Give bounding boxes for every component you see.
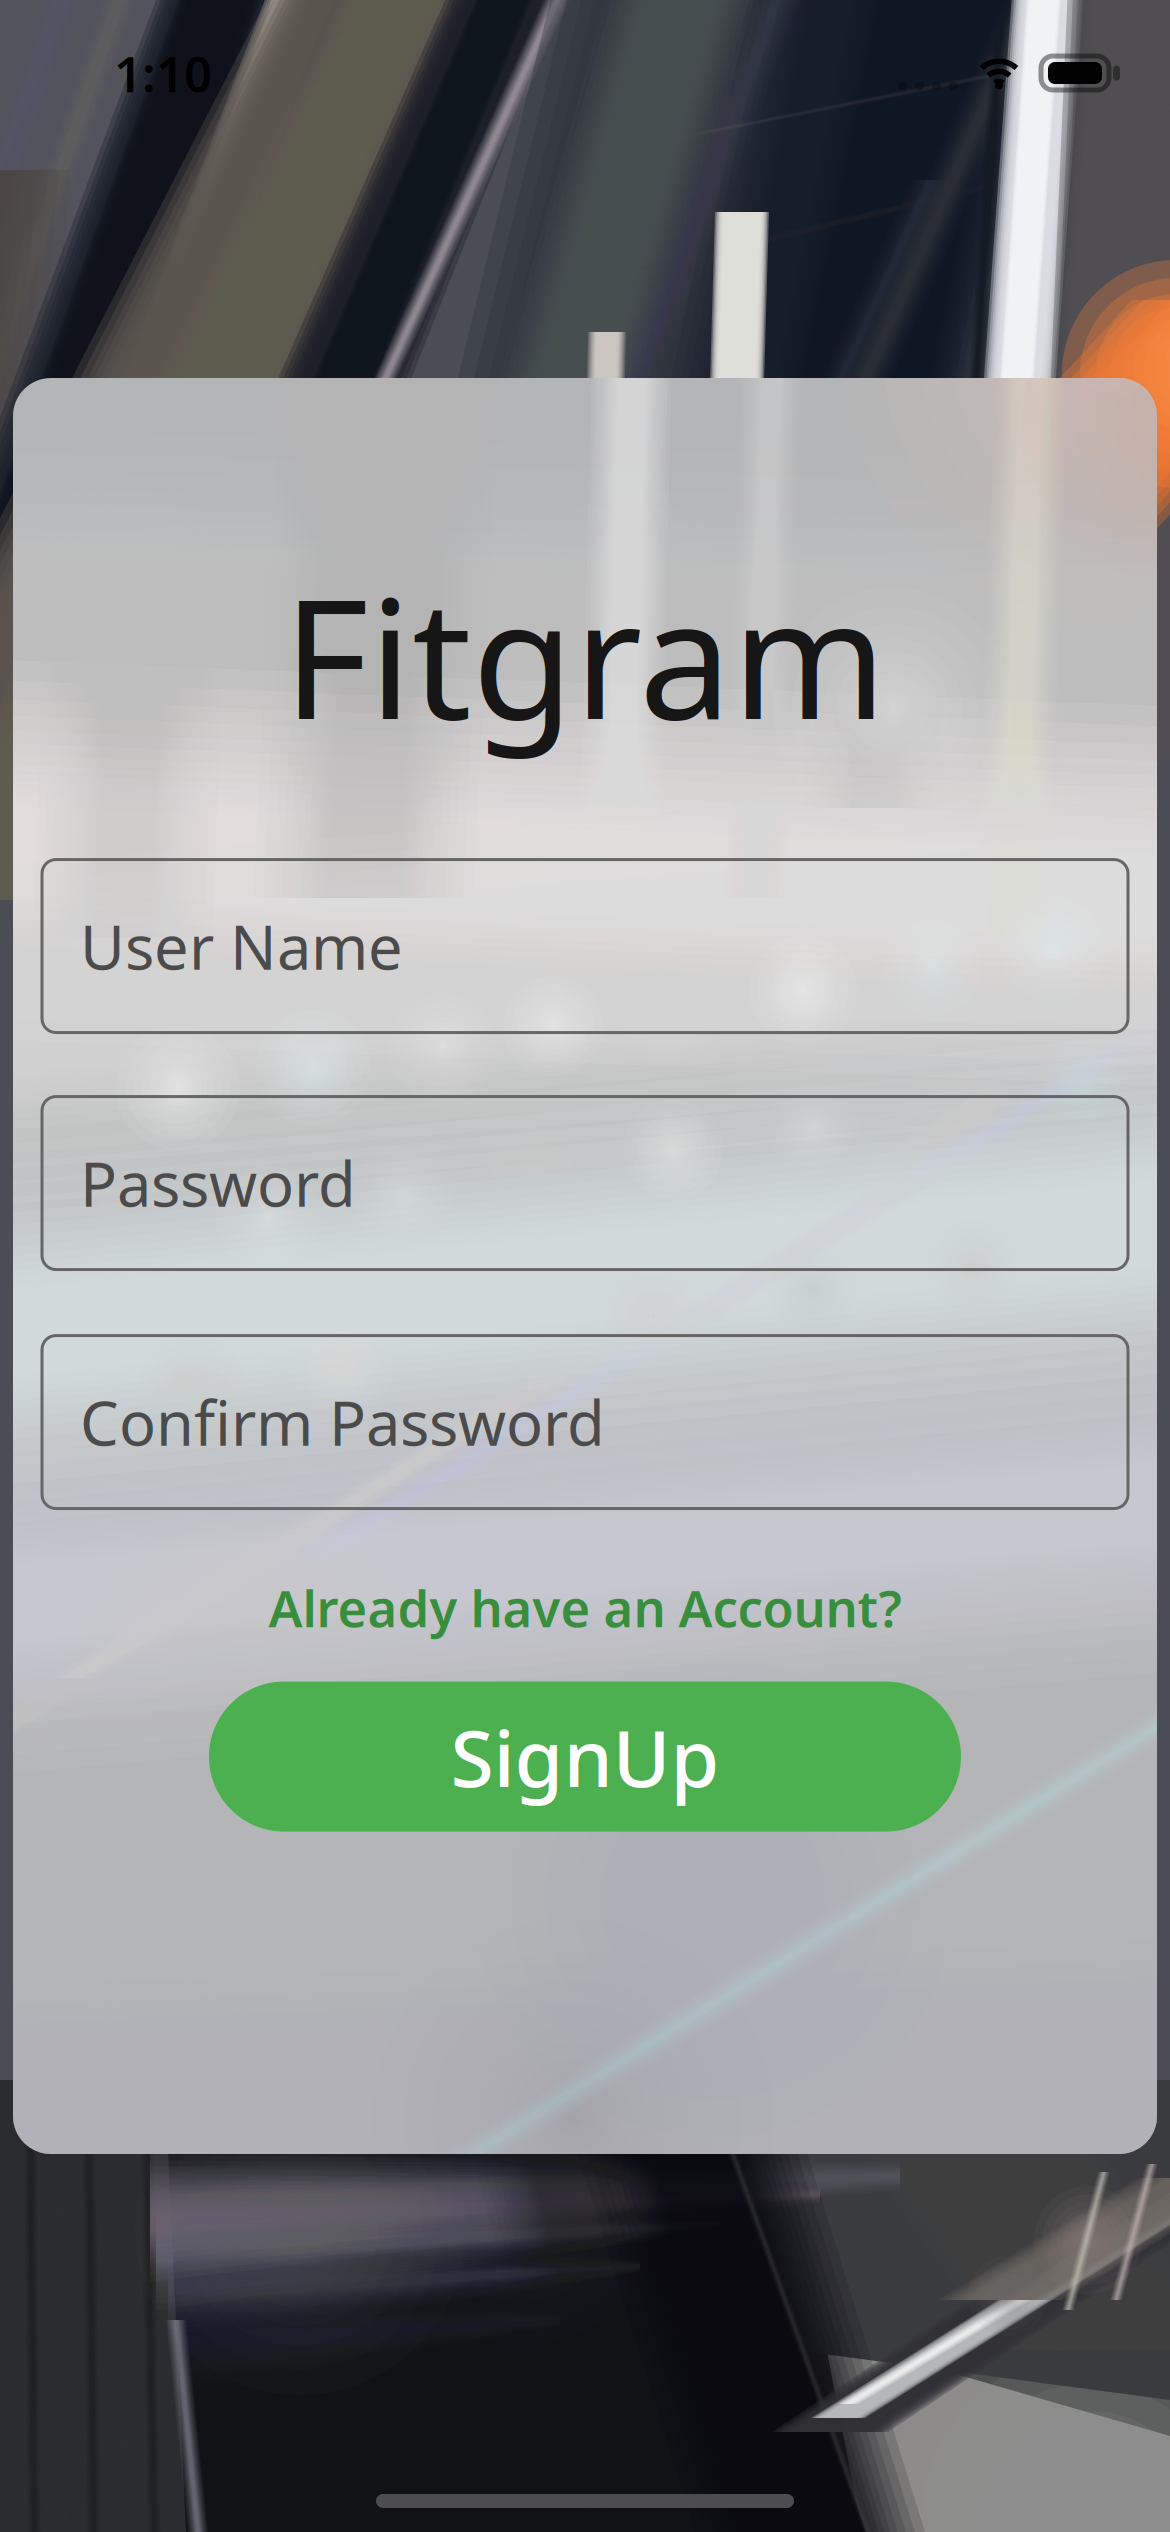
button[interactable]: User Name xyxy=(42,860,1128,1033)
staticText: 1:10 xyxy=(114,40,212,106)
staticText: Fitgram xyxy=(283,545,887,765)
button[interactable]: Password xyxy=(42,1097,1128,1270)
staticText: SignUp xyxy=(450,1704,719,1809)
staticText: Password xyxy=(80,1142,356,1224)
staticText: Confirm Password xyxy=(80,1381,605,1463)
button[interactable]: Already have an Account? xyxy=(135,1570,1035,1646)
staticText: Already have an Account? xyxy=(268,1574,901,1641)
button[interactable]: Confirm Password xyxy=(42,1336,1128,1509)
staticText: User Name xyxy=(80,905,403,987)
button[interactable]: SignUp xyxy=(209,1682,961,1832)
